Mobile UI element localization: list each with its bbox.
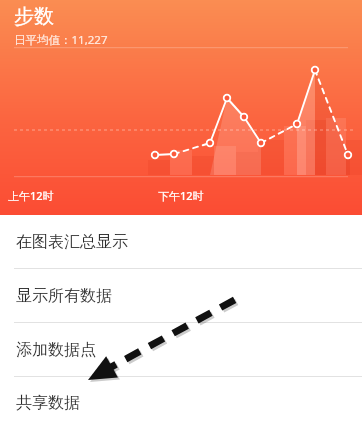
button[interactable]: 添加数据点 — [0, 322, 362, 376]
staticText: 显示所有数据 — [16, 286, 112, 306]
staticText: 在图表汇总显示 — [16, 232, 128, 252]
button[interactable]: 在图表汇总显示 — [0, 215, 362, 268]
button[interactable]: 共享数据 — [0, 376, 362, 428]
staticText: 上午12时 — [8, 188, 54, 203]
staticText: 步数 — [14, 4, 54, 29]
staticText: 下午12时 — [158, 188, 204, 203]
staticText: 日平均值：11,227 — [14, 32, 108, 48]
staticText: 共享数据 — [16, 393, 80, 413]
staticText: 添加数据点 — [16, 340, 96, 360]
button[interactable]: 显示所有数据 — [0, 268, 362, 322]
